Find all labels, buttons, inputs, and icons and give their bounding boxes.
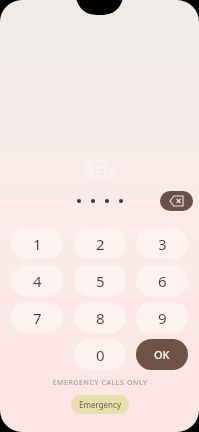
staticText: 5	[96, 271, 105, 291]
button[interactable]: 3	[136, 228, 188, 259]
button[interactable]: Delete	[160, 191, 193, 211]
button[interactable]: 4	[11, 265, 63, 296]
staticText: 6	[158, 271, 167, 291]
button[interactable]: 2	[74, 228, 126, 259]
button[interactable]: 5	[74, 265, 126, 296]
staticText: 0	[96, 345, 105, 365]
staticText: 7	[33, 308, 42, 328]
button[interactable]: 0	[74, 339, 126, 370]
button[interactable]: 8	[74, 302, 126, 333]
button[interactable]: Emergency	[71, 395, 129, 414]
button[interactable]: 7	[11, 302, 63, 333]
staticText: 9	[158, 308, 167, 328]
staticText: 3	[158, 234, 167, 254]
button[interactable]: 6	[136, 265, 188, 296]
staticText: 4	[33, 271, 42, 291]
staticText: 8	[96, 308, 105, 328]
staticText: 2	[96, 234, 105, 254]
button[interactable]: OK	[136, 339, 188, 370]
button[interactable]: 9	[136, 302, 188, 333]
staticText: 1	[33, 234, 42, 254]
staticText: Emergency	[79, 399, 121, 410]
button[interactable]: 1	[11, 228, 63, 259]
staticText: OK	[154, 347, 170, 362]
staticText: EMERGENCY CALLS ONLY	[52, 378, 148, 388]
